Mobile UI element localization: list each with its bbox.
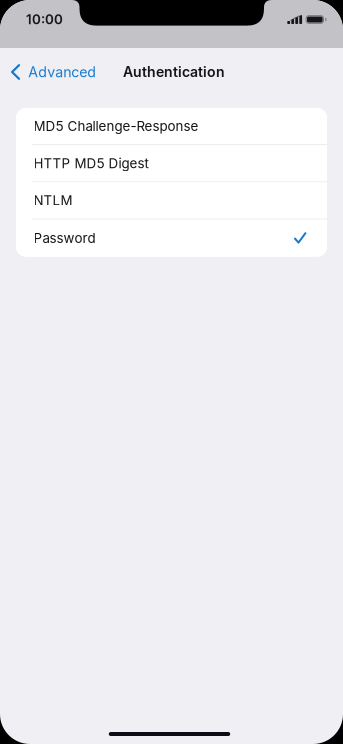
button[interactable]: Advanced xyxy=(0,50,104,94)
staticText: HTTP MD5 Digest xyxy=(33,155,148,171)
button[interactable]: NTLM xyxy=(16,182,327,219)
staticText: 10:00 xyxy=(26,11,63,27)
staticText: NTLM xyxy=(33,192,72,208)
button[interactable]: MD5 Challenge-Response xyxy=(16,108,327,144)
staticText: MD5 Challenge-Response xyxy=(33,118,198,134)
button[interactable]: Password xyxy=(16,220,327,257)
staticText: Advanced xyxy=(28,63,96,80)
button[interactable]: HTTP MD5 Digest xyxy=(16,145,327,181)
staticText: Authentication xyxy=(123,63,225,80)
staticText: Password xyxy=(33,230,95,246)
